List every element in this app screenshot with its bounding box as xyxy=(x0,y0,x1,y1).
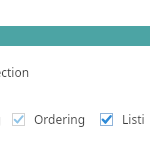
button[interactable]: g xyxy=(0,108,2,130)
staticText: g xyxy=(0,111,2,127)
other: List checkbox xyxy=(100,113,113,126)
button[interactable]: List checkbox xyxy=(100,108,150,130)
button[interactable]: Ordering checkbox xyxy=(12,108,86,130)
staticText: Ordering xyxy=(34,111,86,127)
other: Ordering checkbox xyxy=(12,113,25,126)
staticText: Listing xyxy=(122,111,150,127)
staticText: Selection xyxy=(0,64,30,80)
